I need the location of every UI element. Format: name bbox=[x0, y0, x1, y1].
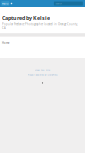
button[interactable]: Captured by Kelsie bbox=[2, 14, 50, 22]
staticText: Home bbox=[2, 41, 9, 45]
staticText: Menu bbox=[2, 2, 9, 5]
button[interactable]: Site options bbox=[10, 1, 13, 5]
staticText: View Full Site bbox=[35, 69, 50, 71]
staticText: Captured by Kelsie bbox=[2, 14, 50, 22]
button[interactable]: Menu bbox=[1, 1, 9, 6]
button[interactable]: Proudly powered by WordPress bbox=[27, 73, 57, 76]
button[interactable]: Search bbox=[54, 1, 83, 5]
button[interactable]: View Full Site bbox=[35, 69, 50, 71]
staticText: Popular Freelance Photographer located i… bbox=[2, 22, 78, 30]
staticText: Proudly powered by WordPress bbox=[27, 73, 57, 76]
staticText: Search bbox=[55, 2, 61, 5]
